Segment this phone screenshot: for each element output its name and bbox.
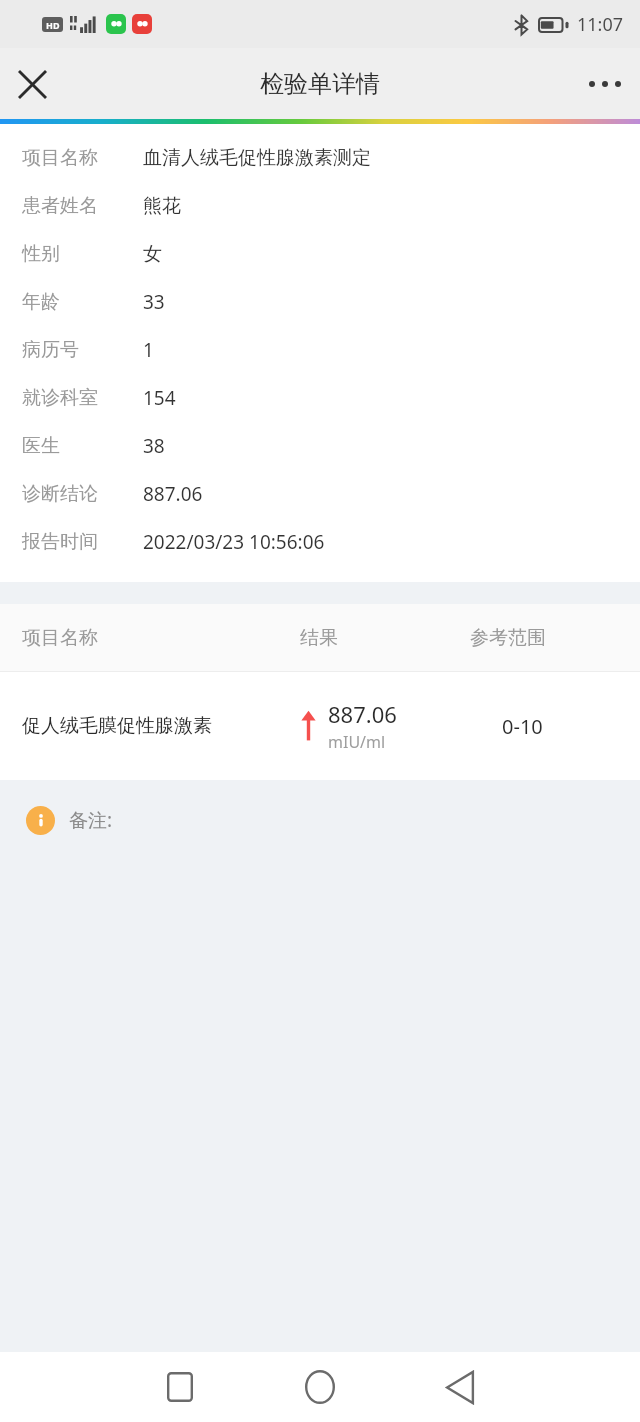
button[interactable]: 备注: xyxy=(0,780,640,860)
staticText: 医生 xyxy=(22,434,143,458)
staticText: 年龄 xyxy=(22,290,143,314)
button[interactable]: 就诊科室 xyxy=(0,374,640,422)
staticText: 0-10 xyxy=(502,713,543,740)
staticText: 154 xyxy=(143,385,176,411)
staticText: 女 xyxy=(143,242,162,266)
staticText: HD xyxy=(46,19,60,31)
button[interactable]: Recent apps xyxy=(110,1352,250,1422)
staticText: 2022/03/23 10:56:06 xyxy=(143,529,325,555)
button[interactable]: Home xyxy=(250,1352,390,1422)
staticText: 887.06 xyxy=(143,481,203,507)
staticText: 性别 xyxy=(22,242,143,266)
staticText: mIU/ml xyxy=(328,731,386,753)
staticText: 33 xyxy=(143,289,165,315)
staticText: 11:07 xyxy=(577,12,624,37)
button[interactable]: 年龄 xyxy=(0,278,640,326)
button[interactable]: 项目名称 xyxy=(0,134,640,182)
staticText: 血清人绒毛促性腺激素测定 xyxy=(143,146,371,170)
staticText: 887.06 xyxy=(328,699,397,729)
staticText: 病历号 xyxy=(22,338,143,362)
staticText: 促人绒毛膜促性腺激素 xyxy=(22,714,300,738)
staticText: 检验单详情 xyxy=(260,69,380,99)
button[interactable]: 促人绒毛膜促性腺激素 xyxy=(0,672,640,780)
button[interactable]: 性别 xyxy=(0,230,640,278)
button[interactable]: 病历号 xyxy=(0,326,640,374)
staticText: 熊花 xyxy=(143,194,181,218)
staticText: 项目名称 xyxy=(22,626,300,650)
staticText: 38 xyxy=(143,433,165,459)
button[interactable]: 患者姓名 xyxy=(0,182,640,230)
staticText: 备注: xyxy=(69,807,113,833)
button[interactable]: 报告时间 xyxy=(0,518,640,566)
button[interactable]: Close xyxy=(0,52,64,116)
staticText: 就诊科室 xyxy=(22,386,143,410)
button[interactable]: More options xyxy=(570,48,640,119)
staticText: 报告时间 xyxy=(22,530,143,554)
staticText: 患者姓名 xyxy=(22,194,143,218)
button[interactable]: 诊断结论 xyxy=(0,470,640,518)
staticText: 项目名称 xyxy=(22,146,143,170)
staticText: 参考范围 xyxy=(470,626,640,650)
staticText: 诊断结论 xyxy=(22,482,143,506)
staticText: 结果 xyxy=(300,626,470,650)
staticText: 1 xyxy=(143,337,154,363)
button[interactable]: 医生 xyxy=(0,422,640,470)
button[interactable]: Back xyxy=(390,1352,530,1422)
